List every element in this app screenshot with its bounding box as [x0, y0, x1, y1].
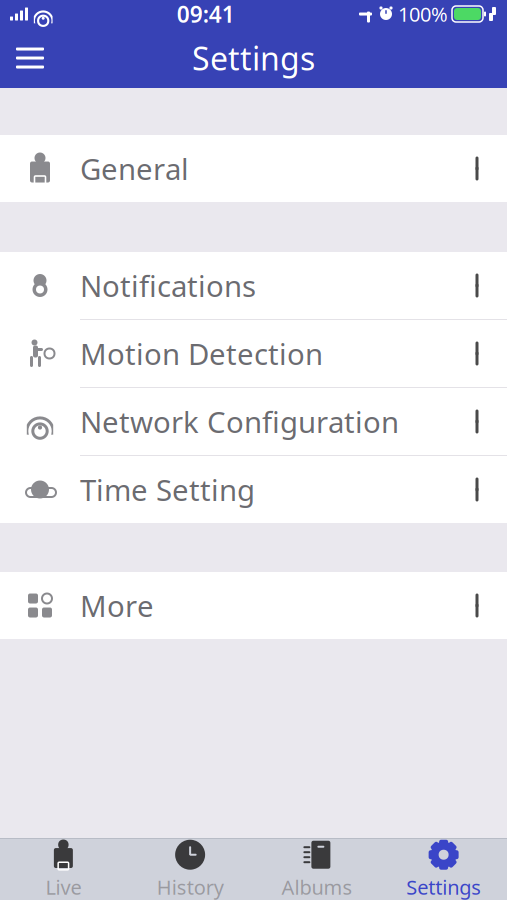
button[interactable]: Albums	[253, 838, 380, 900]
button[interactable]: Motion Detection	[0, 320, 507, 388]
staticText: 09:41	[177, 0, 235, 29]
button[interactable]: General	[0, 135, 507, 202]
staticText: Live	[45, 874, 81, 900]
staticText: More	[80, 586, 154, 625]
button[interactable]: Time Setting	[0, 456, 507, 523]
button[interactable]: Notifications	[0, 252, 507, 320]
staticText: Notifications	[80, 266, 256, 305]
staticText: Settings	[406, 874, 481, 900]
staticText: Motion Detection	[80, 334, 323, 373]
button[interactable]: Network Configuration	[0, 388, 507, 456]
button[interactable]: History	[127, 838, 254, 900]
staticText: Albums	[281, 874, 352, 900]
staticText: History	[157, 874, 224, 900]
staticText: Network Configuration	[80, 402, 399, 441]
staticText: 100%	[398, 1, 448, 27]
staticText: Time Setting	[80, 470, 255, 509]
button[interactable]: Menu	[6, 34, 54, 82]
staticText: General	[80, 149, 189, 188]
staticText: Settings	[192, 37, 315, 79]
button[interactable]: More	[0, 572, 507, 639]
button[interactable]: Settings	[380, 838, 507, 900]
button[interactable]: Live	[0, 838, 127, 900]
